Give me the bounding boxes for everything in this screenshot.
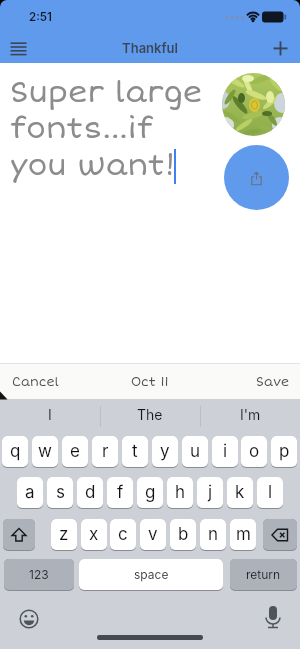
button[interactable]: o (241, 436, 267, 467)
button[interactable]: s (47, 477, 73, 508)
button[interactable] (3, 519, 35, 550)
staticText: k (235, 482, 245, 503)
staticText: p (279, 441, 290, 462)
button[interactable]: Save (256, 374, 290, 389)
staticText: b (178, 524, 189, 545)
button[interactable]: l (257, 477, 283, 508)
staticText: j (208, 482, 213, 503)
staticText: a (25, 482, 35, 503)
button[interactable]: 123 (4, 559, 74, 590)
button[interactable] (267, 36, 295, 62)
staticText: u (190, 441, 201, 462)
button[interactable]: Oct 11 (131, 374, 169, 389)
staticText: s (56, 482, 65, 503)
button[interactable]: n (200, 519, 226, 550)
staticText: g (145, 482, 156, 503)
button[interactable]: space (79, 559, 223, 590)
staticText: Super large fonts...if you want! (10, 74, 203, 184)
staticText: v (148, 524, 158, 545)
staticText: o (249, 441, 260, 462)
button[interactable]: y (152, 436, 178, 467)
staticText: m (236, 524, 251, 545)
staticText: t (132, 441, 138, 462)
button[interactable]: i (212, 436, 238, 467)
button[interactable] (263, 519, 297, 550)
button[interactable] (259, 603, 287, 631)
staticText: i (223, 441, 228, 462)
button[interactable]: x (81, 519, 107, 550)
staticText: n (208, 524, 219, 545)
button[interactable]: b (170, 519, 196, 550)
staticText: d (85, 482, 96, 503)
staticText: Thankful (0, 40, 300, 56)
staticText: I (48, 406, 52, 423)
button[interactable] (15, 605, 43, 633)
staticText: x (89, 524, 99, 545)
staticText: f (117, 482, 124, 503)
staticText: q (10, 441, 21, 462)
button[interactable]: r (92, 436, 118, 467)
button[interactable]: z (51, 519, 77, 550)
button[interactable]: k (227, 477, 253, 508)
staticText: 2:51 (29, 10, 52, 24)
button[interactable]: a (17, 477, 43, 508)
staticText: y (160, 441, 170, 462)
button[interactable]: h (167, 477, 193, 508)
button[interactable]: I (0, 400, 100, 428)
staticText: return (246, 567, 281, 582)
button[interactable]: The (100, 400, 200, 428)
staticText: The (137, 406, 163, 423)
button[interactable]: e (62, 436, 88, 467)
button[interactable]: Cancel (12, 374, 59, 389)
button[interactable]: f (107, 477, 133, 508)
staticText: r (102, 441, 109, 462)
button[interactable] (4, 36, 34, 62)
staticText: I'm (240, 406, 261, 423)
button[interactable] (222, 73, 285, 136)
button[interactable]: u (182, 436, 208, 467)
button[interactable]: v (140, 519, 166, 550)
button[interactable]: g (137, 477, 163, 508)
button[interactable]: d (77, 477, 103, 508)
button[interactable]: p (271, 436, 297, 467)
button[interactable]: I'm (200, 400, 300, 428)
staticText: w (38, 441, 52, 462)
button[interactable]: c (110, 519, 136, 550)
staticText: h (175, 482, 186, 503)
staticText: space (134, 567, 169, 582)
staticText: z (59, 524, 69, 545)
button[interactable]: q (2, 436, 28, 467)
button[interactable]: t (122, 436, 148, 467)
button[interactable]: j (197, 477, 223, 508)
staticText: c (118, 524, 128, 545)
button[interactable]: m (230, 519, 256, 550)
button[interactable]: w (32, 436, 58, 467)
button[interactable] (224, 145, 289, 210)
staticText: 123 (29, 567, 49, 582)
staticText: l (268, 482, 273, 503)
button[interactable]: return (230, 559, 297, 590)
staticText: e (70, 441, 80, 462)
